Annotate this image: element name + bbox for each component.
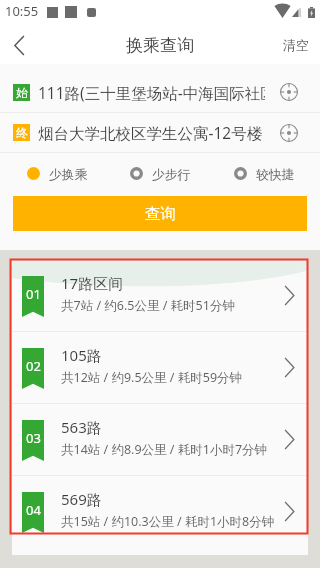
button[interactable]: 较快捷 <box>234 153 295 193</box>
staticText: 105路 <box>61 345 102 365</box>
staticText: 02 <box>26 357 41 375</box>
other: 查看详情 <box>270 404 308 475</box>
staticText: 共14站 / 约8.9公里 / 耗时1小时7分钟 <box>61 441 268 458</box>
staticText: 04 <box>26 501 41 519</box>
staticText: 111路(三十里堡场站-中海国际社区) <box>38 82 265 103</box>
staticText: 换乘查询 <box>126 35 194 56</box>
staticText: 清空 <box>283 37 309 53</box>
other: 查看详情 <box>270 332 308 403</box>
button[interactable]: 02 <box>12 332 308 403</box>
button[interactable]: 03 <box>12 404 308 475</box>
staticText: 569路 <box>61 489 102 509</box>
staticText: 01 <box>26 285 41 303</box>
button[interactable]: 返回 <box>0 26 38 64</box>
staticText: 烟台大学北校区学生公寓-12号楼 <box>38 122 263 143</box>
button[interactable]: 少换乘 <box>27 153 88 193</box>
button[interactable]: 定位 <box>269 72 309 112</box>
staticText: 少步行 <box>152 167 191 183</box>
button[interactable]: 始 <box>0 72 320 112</box>
other: 查看详情 <box>270 476 308 547</box>
button[interactable]: 少步行 <box>130 153 191 193</box>
staticText: 始 <box>16 85 28 100</box>
staticText: 10:55 <box>5 2 39 20</box>
button[interactable]: 清空 <box>272 29 320 61</box>
other: 查看详情 <box>270 260 308 331</box>
button[interactable]: 04 <box>12 476 308 547</box>
staticText: 563路 <box>61 417 102 437</box>
button[interactable]: 查询 <box>13 196 307 231</box>
staticText: 共12站 / 约9.5公里 / 耗时59分钟 <box>61 369 243 386</box>
staticText: 03 <box>26 429 41 447</box>
staticText: 共15站 / 约10.3公里 / 耗时1小时8分钟 <box>61 513 275 530</box>
staticText: 查询 <box>145 204 176 224</box>
button[interactable]: 定位 <box>269 113 309 152</box>
staticText: 终 <box>16 125 28 140</box>
staticText: 17路区间 <box>61 273 124 293</box>
staticText: 较快捷 <box>256 167 295 183</box>
button[interactable]: 01 <box>12 260 308 331</box>
button[interactable]: 终 <box>0 113 320 152</box>
staticText: 共7站 / 约6.5公里 / 耗时51分钟 <box>61 297 235 314</box>
staticText: 少换乘 <box>49 167 88 183</box>
